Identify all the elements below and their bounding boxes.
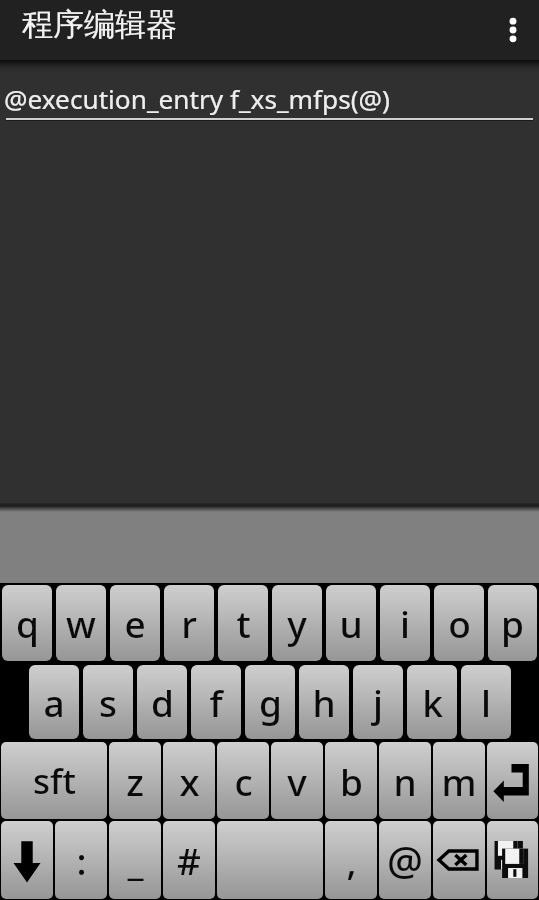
button[interactable]: h bbox=[299, 665, 349, 739]
button[interactable]: b bbox=[325, 742, 377, 819]
button[interactable]: sft bbox=[1, 742, 107, 819]
staticText: q bbox=[16, 598, 39, 648]
staticText: x bbox=[179, 756, 200, 806]
button[interactable]: k bbox=[407, 665, 457, 739]
button[interactable]: t bbox=[218, 585, 268, 661]
staticText: p bbox=[501, 598, 524, 648]
staticText: o bbox=[448, 598, 471, 648]
button[interactable]: @ bbox=[379, 821, 431, 899]
staticText: i bbox=[400, 598, 410, 648]
button[interactable]: Hide keyboard bbox=[1, 821, 53, 899]
button[interactable]: c bbox=[217, 742, 269, 819]
staticText bbox=[265, 835, 275, 885]
button[interactable]: Save bbox=[487, 821, 538, 899]
staticText: e bbox=[124, 598, 146, 648]
button[interactable]: Space bbox=[217, 821, 323, 899]
staticText: k bbox=[422, 677, 443, 727]
button[interactable]: a bbox=[29, 665, 79, 739]
staticText: c bbox=[234, 756, 253, 806]
button[interactable]: s bbox=[83, 665, 133, 739]
staticText: m bbox=[441, 756, 477, 806]
button[interactable]: d bbox=[137, 665, 187, 739]
staticText: y bbox=[287, 598, 307, 648]
staticText: z bbox=[126, 756, 144, 806]
button[interactable]: q bbox=[2, 585, 52, 661]
button[interactable]: x bbox=[163, 742, 215, 819]
button[interactable]: m bbox=[433, 742, 485, 819]
staticText: t bbox=[236, 598, 251, 648]
staticText: b bbox=[340, 756, 363, 806]
staticText: v bbox=[287, 756, 307, 806]
button[interactable]: More options bbox=[487, 4, 539, 56]
button[interactable]: f bbox=[191, 665, 241, 739]
staticText: a bbox=[43, 677, 65, 727]
staticText: , bbox=[346, 835, 357, 885]
button[interactable]: o bbox=[434, 585, 484, 661]
button[interactable]: w bbox=[56, 585, 106, 661]
staticText: @execution_entry f_xs_mfps(@) bbox=[4, 81, 390, 117]
button[interactable]: # bbox=[163, 821, 215, 899]
staticText: @ bbox=[387, 833, 423, 887]
button[interactable]: : bbox=[55, 821, 107, 899]
staticText: l bbox=[481, 677, 491, 727]
staticText: 程序编辑器 bbox=[22, 5, 177, 44]
staticText: d bbox=[151, 677, 174, 727]
button[interactable]: _ bbox=[109, 821, 161, 899]
button[interactable]: r bbox=[164, 585, 214, 661]
staticText: sft bbox=[33, 757, 76, 805]
button[interactable]: u bbox=[326, 585, 376, 661]
button[interactable]: v bbox=[271, 742, 323, 819]
staticText: h bbox=[312, 677, 336, 727]
button[interactable]: y bbox=[272, 585, 322, 661]
staticText: _ bbox=[127, 835, 144, 885]
button[interactable]: Backspace bbox=[433, 821, 485, 899]
button[interactable]: Enter bbox=[487, 742, 538, 819]
staticText: j bbox=[373, 677, 383, 727]
button[interactable]: j bbox=[353, 665, 403, 739]
staticText: s bbox=[99, 677, 117, 727]
staticText: r bbox=[181, 598, 197, 648]
button[interactable]: i bbox=[380, 585, 430, 661]
staticText: f bbox=[209, 677, 223, 727]
button[interactable]: g bbox=[245, 665, 295, 739]
staticText: w bbox=[66, 598, 96, 648]
button[interactable]: l bbox=[461, 665, 511, 739]
button[interactable]: n bbox=[379, 742, 431, 819]
staticText: n bbox=[393, 756, 417, 806]
button[interactable]: z bbox=[109, 742, 161, 819]
button[interactable]: e bbox=[110, 585, 160, 661]
button[interactable]: , bbox=[325, 821, 377, 899]
staticText: # bbox=[177, 835, 201, 885]
staticText: g bbox=[259, 677, 282, 727]
staticText: : bbox=[76, 835, 87, 885]
staticText: u bbox=[339, 598, 363, 648]
button[interactable]: p bbox=[488, 585, 537, 661]
